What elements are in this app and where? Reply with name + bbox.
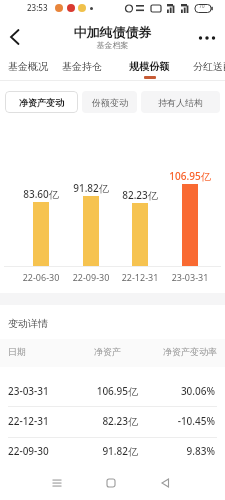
staticText: -10.45% <box>155 414 215 428</box>
button[interactable] <box>51 477 63 489</box>
staticText: 22-06-30 <box>11 271 71 283</box>
button[interactable]: 份额变动 <box>82 91 137 113</box>
button[interactable]: 23-03-31 <box>0 375 225 406</box>
button[interactable] <box>8 29 22 45</box>
staticText: 106.95亿 <box>160 169 220 183</box>
staticText: 基金持仓 <box>62 60 102 73</box>
staticText: 82.23亿 <box>110 188 170 202</box>
staticText: 83.60亿 <box>11 187 71 201</box>
button[interactable]: 持有人结构 <box>141 91 220 113</box>
button[interactable] <box>105 477 117 489</box>
button[interactable] <box>196 31 218 41</box>
staticText: 82.23亿 <box>78 414 138 428</box>
button[interactable]: 基金概况 <box>6 59 46 72</box>
staticText: 变动详情 <box>8 317 48 330</box>
staticText: 23-03-31 <box>160 271 220 283</box>
button[interactable]: 基金持仓 <box>60 59 100 72</box>
staticText: 中加纯债债券 <box>0 24 225 40</box>
staticText: 30.06% <box>155 384 215 398</box>
staticText: 分红送配 <box>193 60 225 73</box>
staticText: 净资产 <box>94 346 121 357</box>
staticText: 规模份额 <box>129 60 169 73</box>
staticText: 净资产变动率 <box>157 346 217 357</box>
staticText: 日期 <box>8 346 26 357</box>
staticText: 23:53 <box>27 2 48 13</box>
button[interactable]: 22-09-30 <box>0 435 225 466</box>
staticText: 22-12-31 <box>8 414 49 428</box>
staticText: 106.95亿 <box>78 384 138 398</box>
staticText: 22-09-30 <box>61 271 121 283</box>
button[interactable] <box>159 477 171 489</box>
staticText: 份额变动 <box>92 97 128 108</box>
staticText: 23-03-31 <box>8 384 49 398</box>
button[interactable]: 规模份额 <box>127 59 167 72</box>
button[interactable]: 净资产变动 <box>5 91 78 113</box>
staticText: 净资产变动 <box>19 97 64 108</box>
staticText: 基金档案 <box>0 40 225 50</box>
staticText: 91.82亿 <box>61 181 121 195</box>
button[interactable]: 22-12-31 <box>0 405 225 436</box>
staticText: 9.83% <box>155 444 215 458</box>
staticText: 70 <box>199 3 205 10</box>
staticText: 91.82亿 <box>78 444 138 458</box>
staticText: 22-09-30 <box>8 444 49 458</box>
staticText: 持有人结构 <box>158 97 203 108</box>
staticText: 基金概况 <box>8 60 48 73</box>
staticText: 22-12-31 <box>110 271 170 283</box>
button[interactable]: 分红送配 <box>191 59 225 72</box>
